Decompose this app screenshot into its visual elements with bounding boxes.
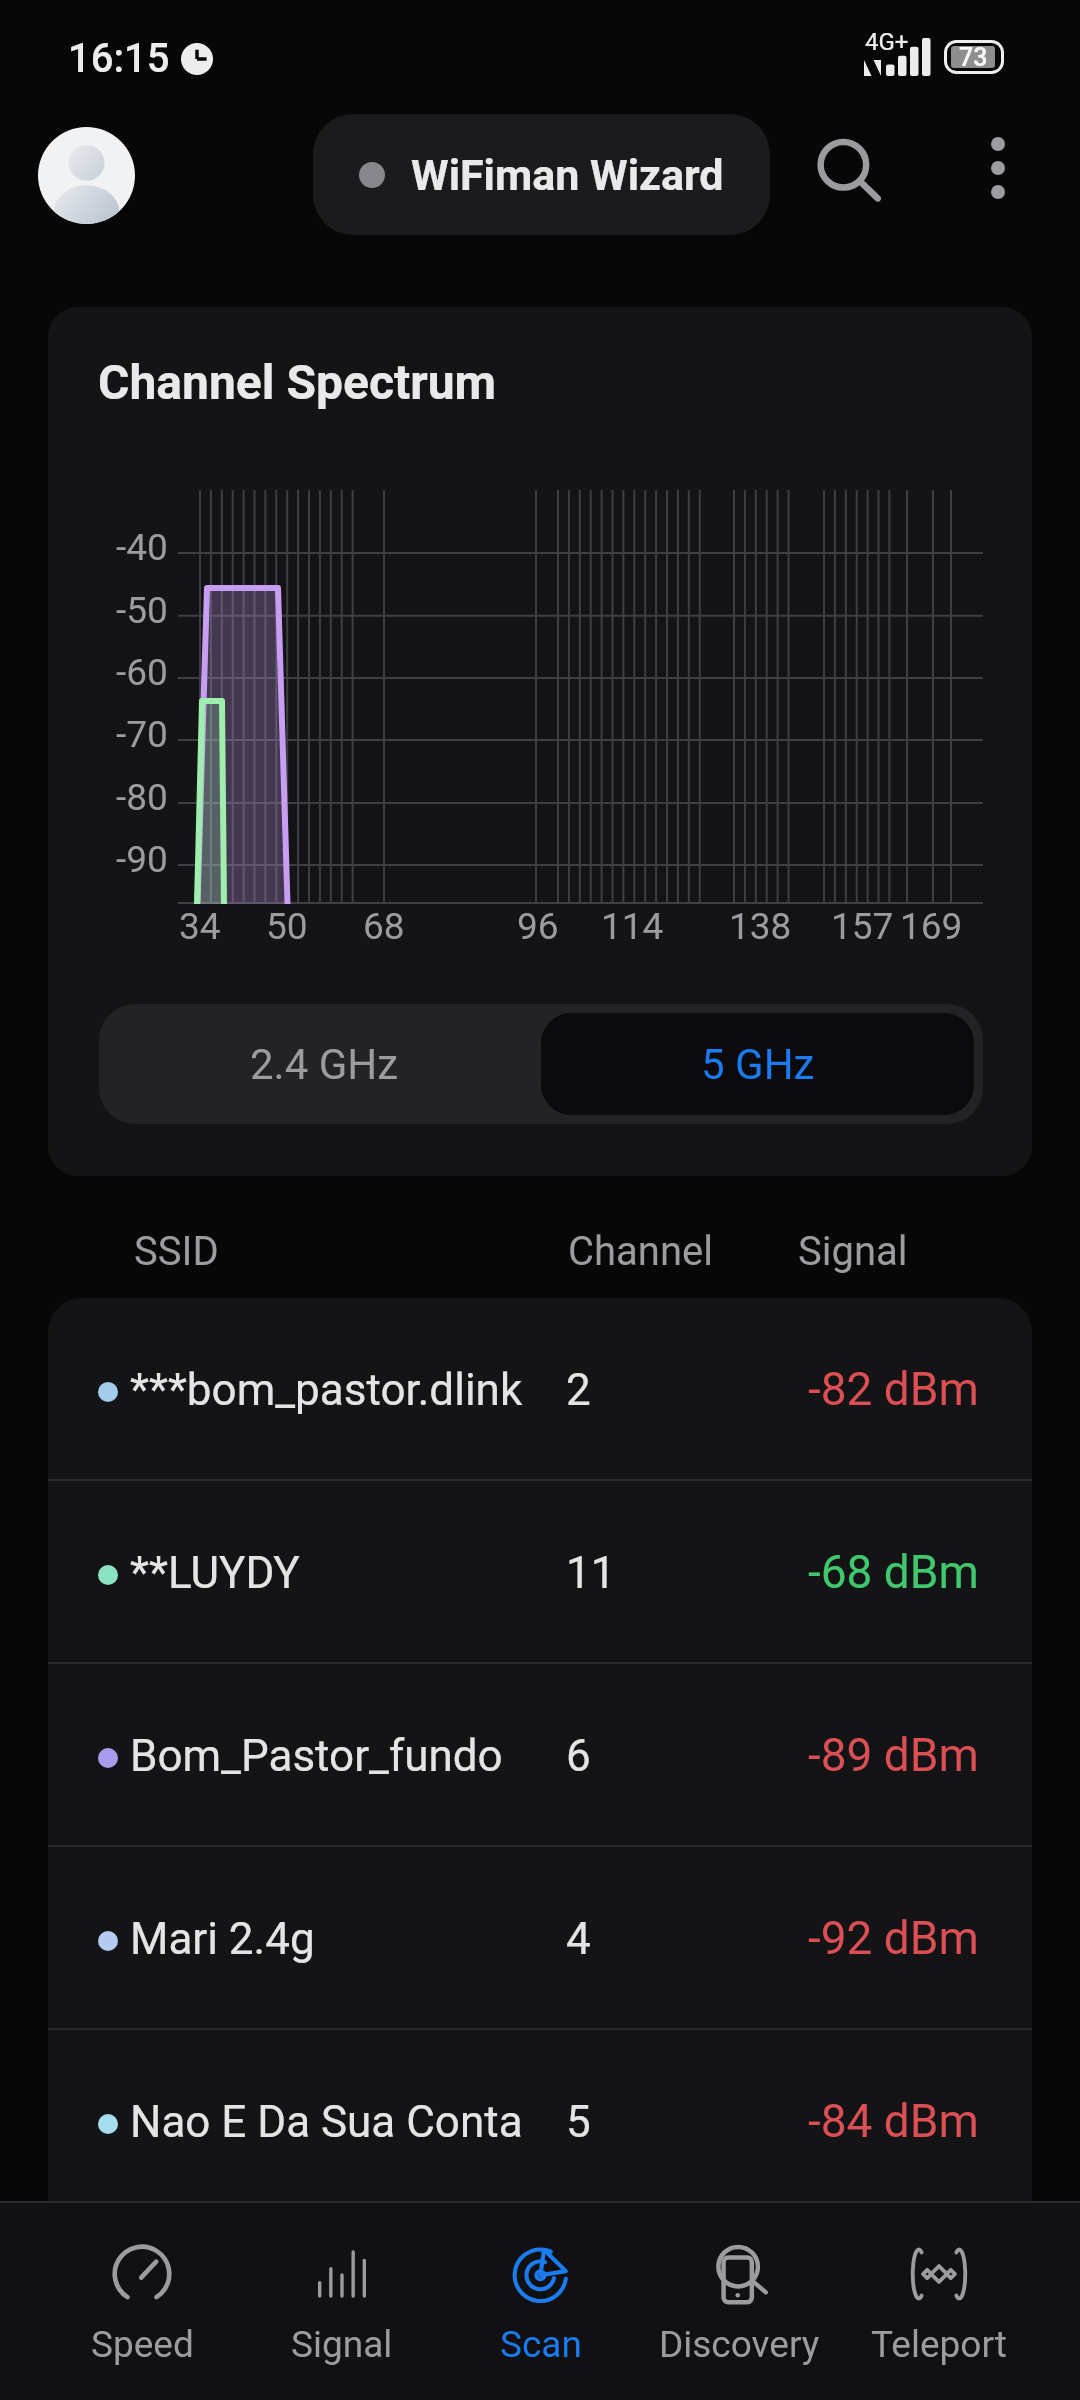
button[interactable]: Search <box>798 120 902 224</box>
button[interactable]: Profile <box>38 127 135 224</box>
button[interactable]: **LUYDY <box>48 1481 1032 1664</box>
staticText: Channel Spectrum <box>98 354 497 410</box>
staticText: Signal <box>291 2323 393 2366</box>
button[interactable]: 2.4 GHz <box>108 1013 541 1115</box>
button[interactable]: Signal <box>242 2203 441 2400</box>
staticText: 138 <box>729 905 792 948</box>
staticText: Mari 2.4g <box>130 1913 315 1965</box>
staticText: 169 <box>900 905 963 948</box>
staticText: 4 <box>566 1913 591 1965</box>
staticText: -70 <box>116 713 168 756</box>
staticText: 50 <box>266 905 308 948</box>
staticText: WiFiman Wizard <box>411 150 724 200</box>
staticText: Channel <box>568 1228 713 1275</box>
button[interactable]: Mari 2.4g <box>48 1847 1032 2030</box>
button[interactable]: Scan <box>441 2203 640 2400</box>
staticText: -60 <box>116 651 168 694</box>
staticText: 2.4 GHz <box>250 1040 399 1089</box>
staticText: 73 <box>959 43 988 72</box>
button[interactable]: More options <box>950 120 1046 216</box>
staticText: Scan <box>500 2323 582 2366</box>
staticText: Bom_Pastor_fundo <box>130 1730 503 1782</box>
staticText: Signal <box>798 1228 908 1275</box>
staticText: Discovery <box>659 2323 820 2366</box>
staticText: 2 <box>566 1364 591 1416</box>
staticText: -89 dBm <box>808 1728 979 1782</box>
button[interactable]: Speed <box>42 2203 242 2400</box>
staticText: 4G+ <box>865 28 909 56</box>
staticText: -90 <box>116 838 168 881</box>
staticText: 96 <box>517 905 559 948</box>
staticText: 34 <box>179 905 221 948</box>
staticText: Speed <box>91 2323 194 2366</box>
staticText: 5 GHz <box>701 1040 815 1089</box>
staticText: -68 dBm <box>808 1545 979 1599</box>
staticText: **LUYDY <box>130 1547 300 1599</box>
button[interactable]: WiFiman Wizard <box>313 114 770 235</box>
staticText: 157 <box>831 905 894 948</box>
staticText: -40 <box>116 526 168 569</box>
staticText: Nao E Da Sua Conta <box>130 2096 523 2148</box>
staticText: -84 dBm <box>808 2094 979 2148</box>
staticText: 11 <box>566 1547 616 1599</box>
staticText: ***bom_pastor.dlink <box>130 1364 523 1416</box>
staticText: -92 dBm <box>808 1911 979 1965</box>
staticText: Teleport <box>871 2323 1007 2366</box>
button[interactable]: Discovery <box>640 2203 839 2400</box>
staticText: 5 <box>566 2096 591 2148</box>
button[interactable]: Teleport <box>839 2203 1038 2400</box>
staticText: -50 <box>116 589 168 632</box>
staticText: -82 dBm <box>808 1362 979 1416</box>
staticText: -80 <box>116 776 168 819</box>
button[interactable]: Nao E Da Sua Conta <box>48 2030 1032 2213</box>
button[interactable]: 5 GHz <box>541 1013 974 1115</box>
staticText: 16:15 <box>68 35 170 82</box>
button[interactable]: ***bom_pastor.dlink <box>48 1298 1032 1481</box>
staticText: 6 <box>566 1730 591 1782</box>
staticText: 114 <box>601 905 664 948</box>
staticText: SSID <box>134 1228 219 1275</box>
button[interactable]: Bom_Pastor_fundo <box>48 1664 1032 1847</box>
staticText: 68 <box>363 905 405 948</box>
